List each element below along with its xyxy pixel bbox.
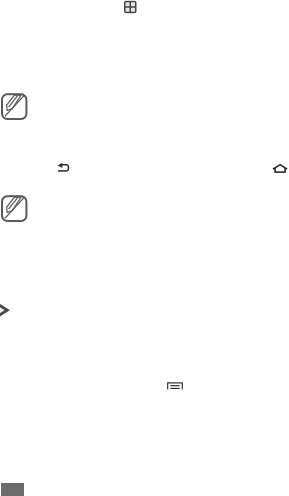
button[interactable]: Back	[57, 162, 70, 172]
button[interactable]: Menu	[167, 382, 183, 390]
button[interactable]: Home	[272, 164, 288, 173]
button[interactable]: Next	[0, 304, 9, 316]
button[interactable]: Apps	[124, 1, 136, 13]
